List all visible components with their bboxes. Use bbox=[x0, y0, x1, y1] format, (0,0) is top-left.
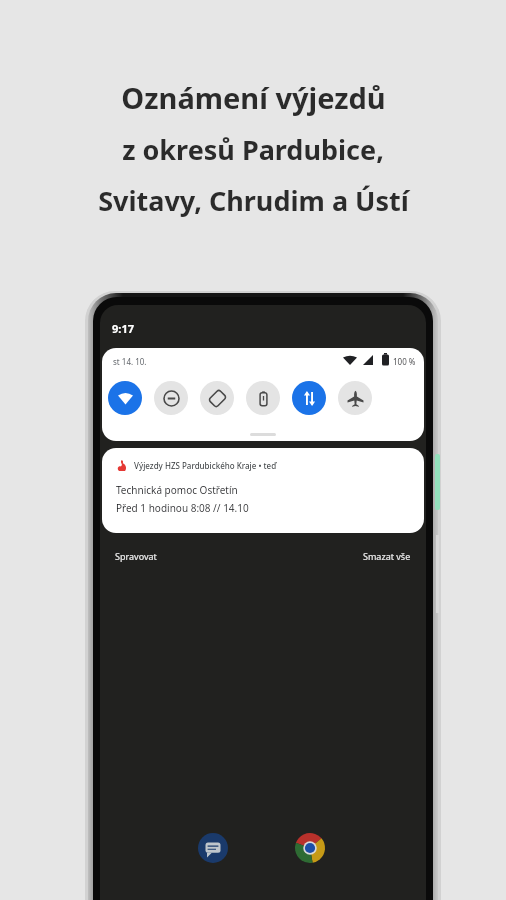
staticText: Před 1 hodinou 8:08 // 14.10 bbox=[116, 501, 249, 515]
staticText: z okresů Pardubice, bbox=[122, 131, 384, 168]
button[interactable]: Smazat vše bbox=[358, 547, 416, 565]
staticText: 9:17 bbox=[112, 321, 134, 336]
button[interactable]: Wi-Fi bbox=[108, 381, 142, 415]
staticText: Oznámení výjezdů bbox=[121, 78, 386, 117]
staticText: Smazat vše bbox=[363, 550, 411, 562]
staticText: st 14. 10. bbox=[113, 356, 147, 367]
staticText: Svitavy, Chrudim a Ústí bbox=[98, 182, 409, 219]
button[interactable]: Auto rotate bbox=[200, 381, 234, 415]
staticText: Výjezdy HZS Pardubického Kraje • teď bbox=[134, 460, 277, 471]
staticText: Technická pomoc Ostřetín bbox=[116, 483, 238, 497]
button[interactable]: Airplane mode bbox=[338, 381, 372, 415]
button[interactable]: Výjezdy HZS Pardubického Kraje • teď bbox=[102, 448, 424, 533]
staticText: 100 % bbox=[393, 356, 416, 367]
button[interactable]: Do not disturb bbox=[154, 381, 188, 415]
staticText: Spravovat bbox=[115, 550, 157, 562]
button[interactable]: Spravovat bbox=[110, 547, 162, 565]
button[interactable]: Messages bbox=[198, 833, 228, 863]
button[interactable]: Chrome bbox=[295, 833, 325, 863]
button[interactable]: Battery saver bbox=[246, 381, 280, 415]
button[interactable]: Mobile data bbox=[292, 381, 326, 415]
